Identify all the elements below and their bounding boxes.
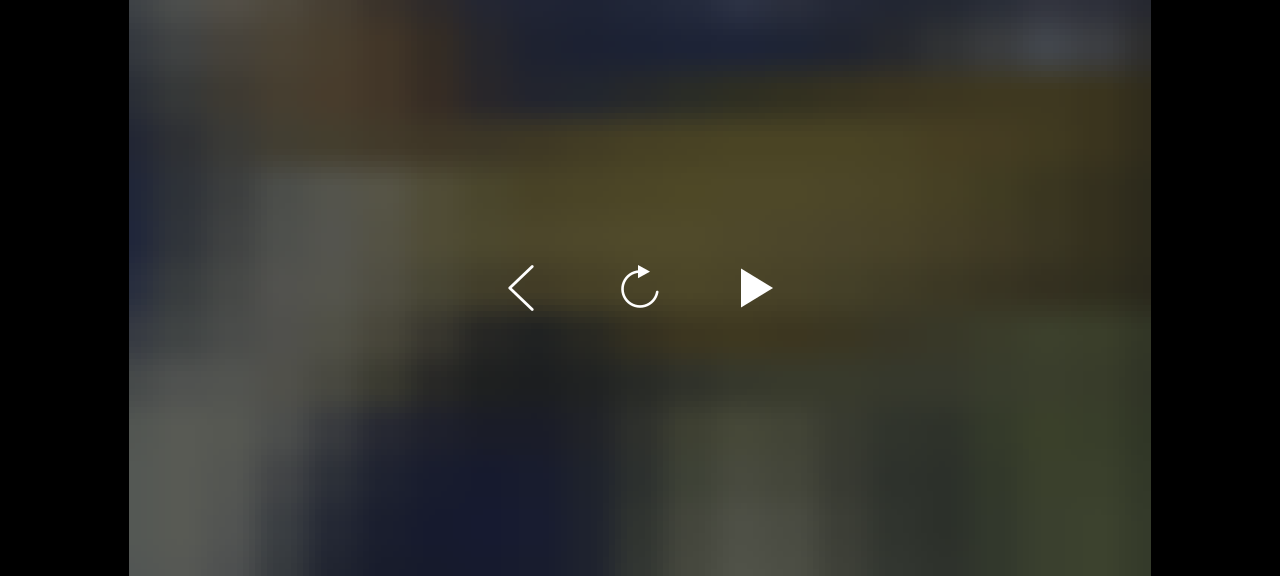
- button[interactable]: Play: [725, 256, 789, 320]
- button[interactable]: Replay: [608, 257, 672, 321]
- button[interactable]: Rewind: [489, 256, 553, 320]
